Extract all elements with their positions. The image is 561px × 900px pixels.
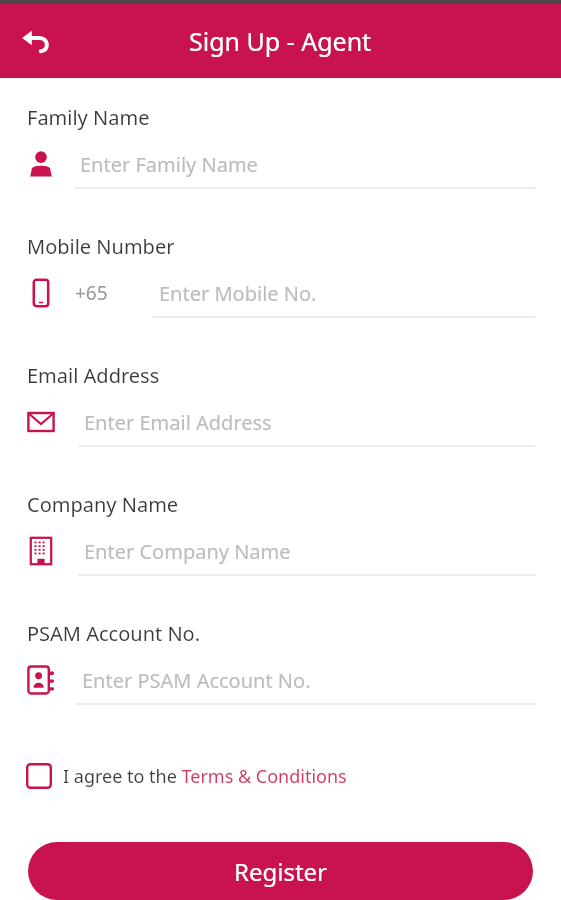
staticText: Register (234, 855, 328, 888)
button[interactable]: Register (28, 842, 533, 900)
staticText: Email Address (27, 362, 160, 389)
staticText: Enter Company Name (84, 538, 291, 565)
button[interactable]: Mobile number (0, 270, 561, 316)
other: Mobile number (26, 278, 56, 308)
other: Email address (26, 407, 56, 437)
other: Company name (26, 536, 56, 566)
staticText: Company Name (27, 491, 179, 518)
button[interactable]: Back (10, 15, 62, 67)
staticText: Family Name (27, 104, 150, 131)
button[interactable]: Company name (0, 528, 561, 574)
staticText: Enter Mobile No. (159, 280, 317, 307)
button[interactable]: PSAM account number (0, 657, 561, 703)
other: PSAM account number (26, 665, 56, 695)
staticText: Sign Up - Agent (189, 24, 372, 58)
button[interactable]: Family name (0, 141, 561, 187)
staticText: Enter PSAM Account No. (82, 667, 311, 694)
staticText: PSAM Account No. (27, 620, 201, 647)
button[interactable]: I agree to the Terms & Conditions (26, 763, 347, 789)
staticText: I agree to the Terms & Conditions (63, 764, 347, 789)
staticText: Enter Email Address (84, 409, 272, 436)
staticText: Enter Family Name (80, 151, 258, 178)
staticText: Mobile Number (27, 233, 175, 260)
staticText: +65 (75, 280, 108, 306)
other: Family name (26, 149, 56, 179)
button[interactable]: Email address (0, 399, 561, 445)
